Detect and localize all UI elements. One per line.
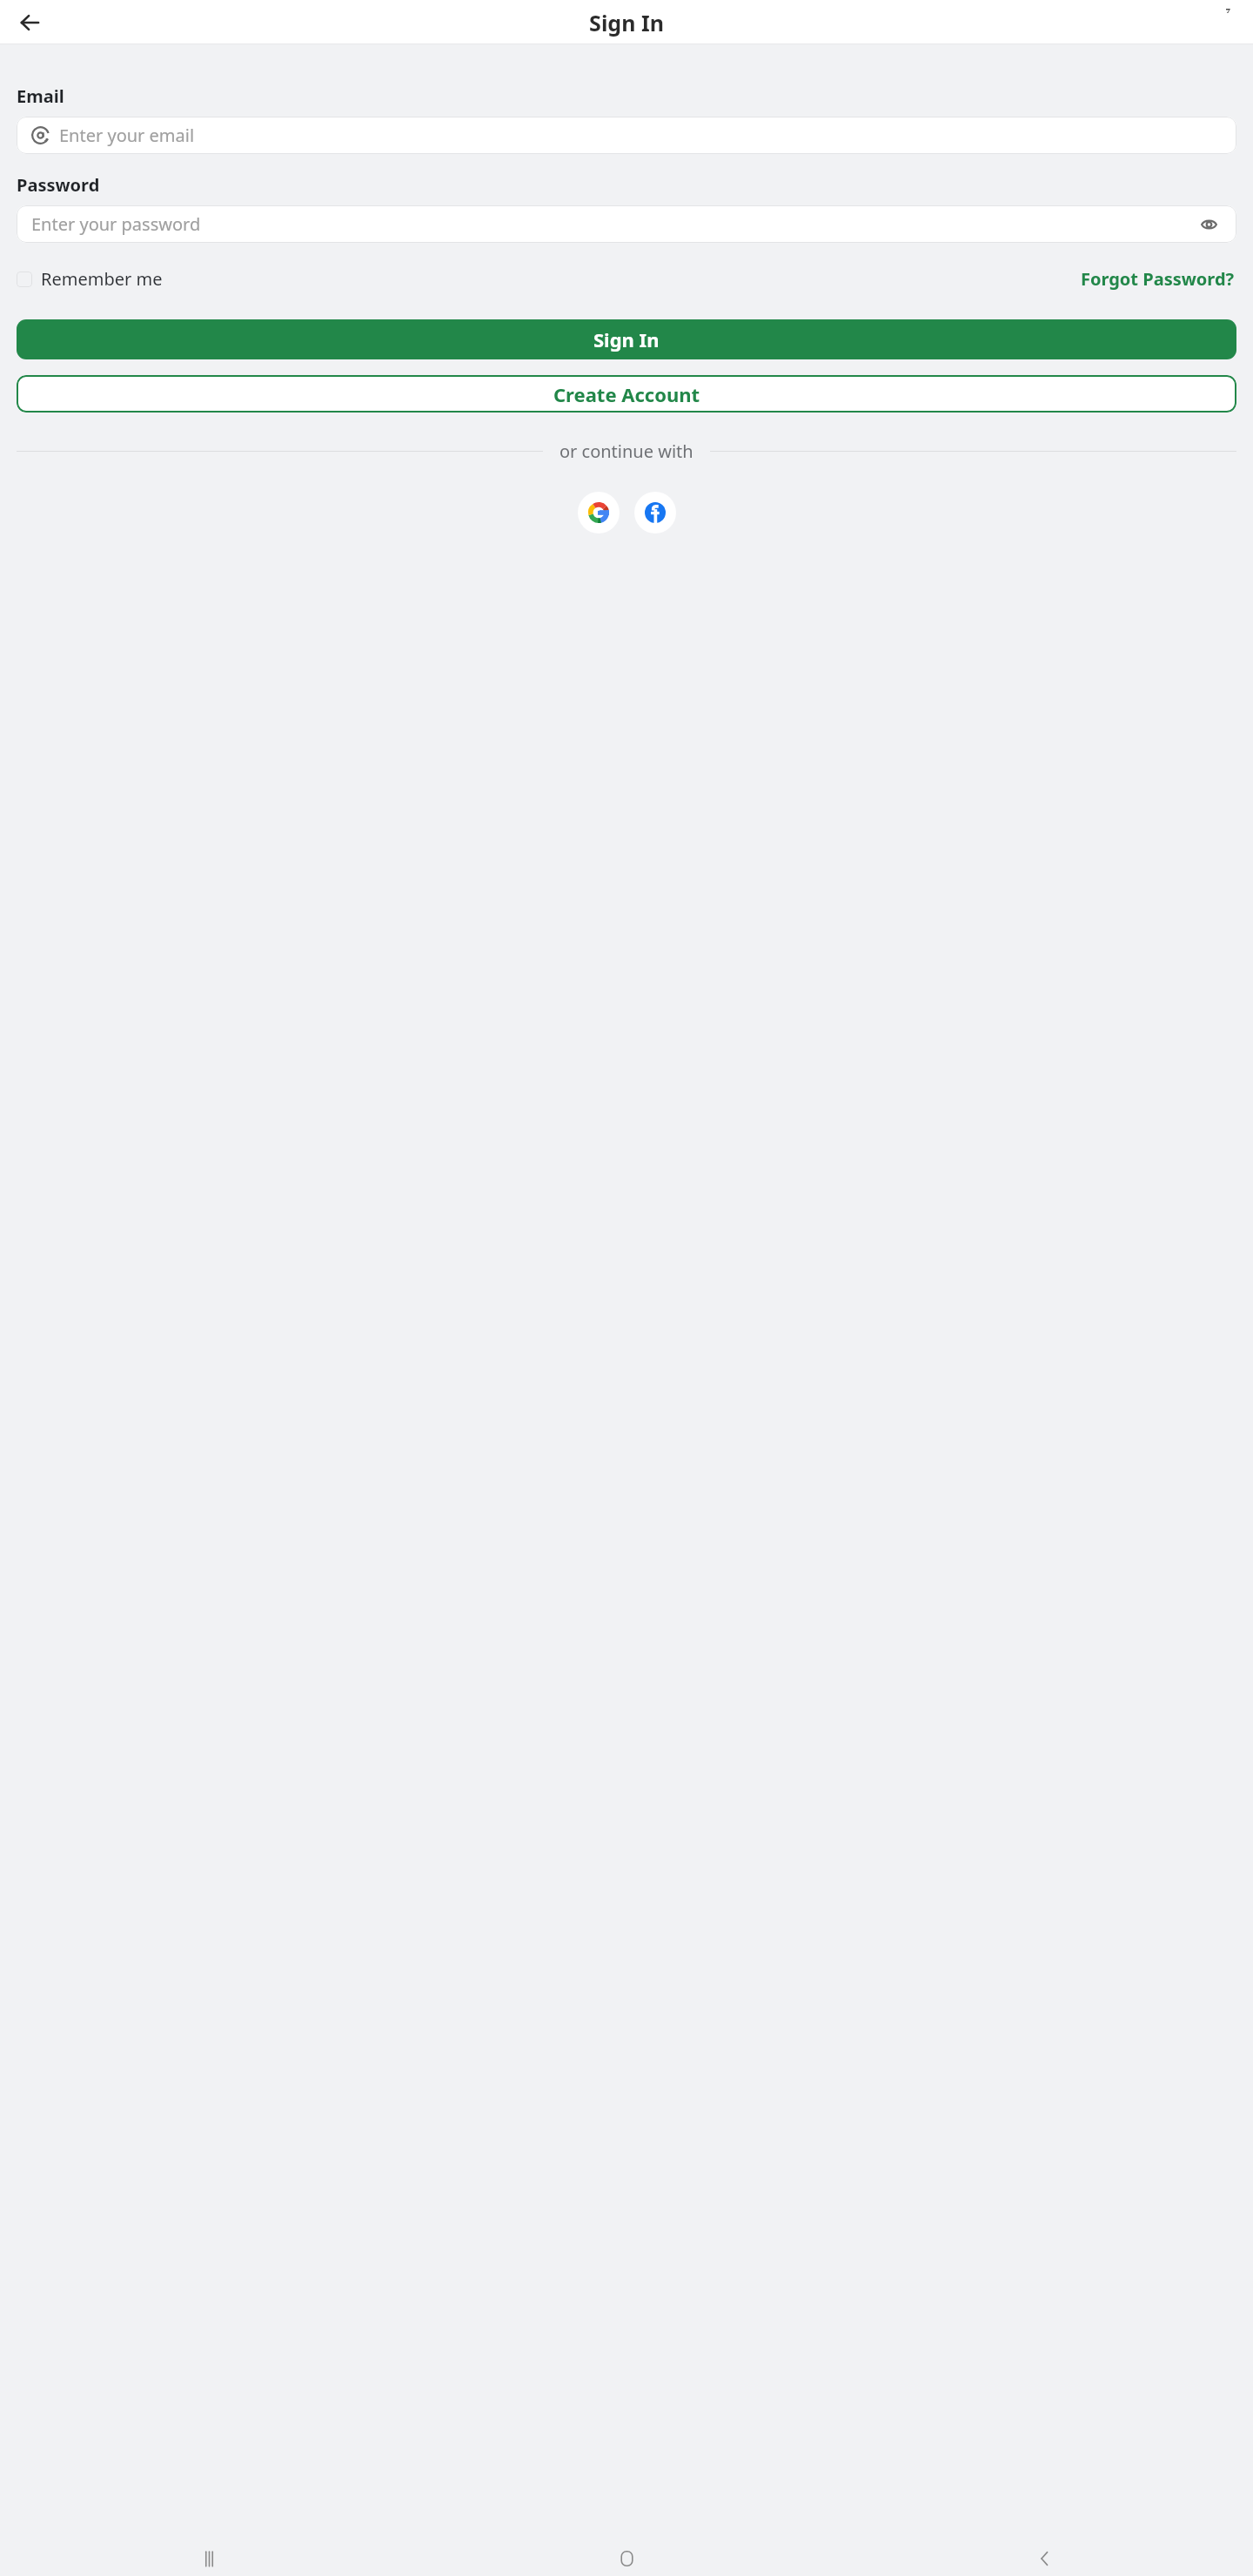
button[interactable]: Forgot Password?: [1079, 265, 1236, 292]
staticText: Remember me: [41, 267, 163, 291]
staticText: Forgot Password?: [1081, 267, 1235, 291]
button[interactable]: Sign In: [17, 319, 1236, 359]
button[interactable]: Sign in with Facebook: [634, 492, 676, 533]
button[interactable]: Create Account: [17, 375, 1236, 413]
staticText: Enter your password: [31, 212, 1196, 236]
staticText: Enter your email: [59, 124, 1222, 147]
button[interactable]: Show password: [1196, 211, 1222, 238]
button[interactable]: Back: [835, 2541, 1253, 2576]
button[interactable]: Home: [418, 2541, 835, 2576]
staticText: Email: [17, 84, 64, 108]
button[interactable]: Recents: [0, 2541, 418, 2576]
staticText: Sign In: [593, 326, 660, 352]
button[interactable]: Enter your email: [17, 117, 1236, 154]
button[interactable]: Enter your password: [17, 205, 1236, 243]
button[interactable]: Back: [13, 5, 48, 40]
button[interactable]: Remember me: [17, 267, 166, 291]
staticText: or continue with: [559, 439, 694, 463]
staticText: Password: [17, 173, 100, 197]
staticText: Sign In: [589, 8, 664, 37]
staticText: Create Account: [553, 381, 700, 407]
button[interactable]: Sign in with Google: [578, 492, 620, 533]
